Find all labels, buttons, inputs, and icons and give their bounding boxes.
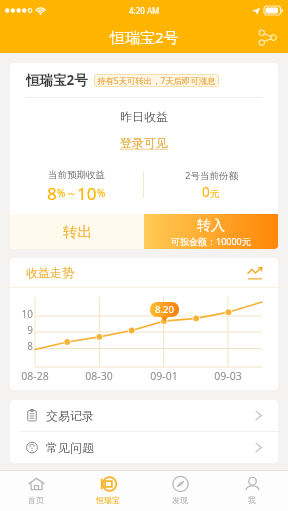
staticText: 8 <box>10 339 33 353</box>
staticText: 可投金额：10000元 <box>171 235 251 247</box>
staticText: 恒瑞宝2号 <box>110 27 179 47</box>
staticText: 发现 <box>172 495 188 505</box>
staticText: 4:20 AM <box>129 5 160 16</box>
staticText: 登录可见 <box>120 135 168 150</box>
staticText: 08-30 <box>79 369 119 383</box>
staticText: 首页 <box>28 495 44 505</box>
button[interactable]: Trend chart <box>244 262 266 284</box>
staticText: 10 <box>10 307 33 321</box>
staticText: 交易记录 <box>46 408 94 423</box>
button[interactable]: 登录可见 <box>120 135 168 150</box>
staticText: 8.20 <box>155 303 174 316</box>
button[interactable]: 常见问题 <box>10 432 278 463</box>
staticText: 0 <box>202 183 210 201</box>
staticText: 08-28 <box>15 369 55 383</box>
button[interactable]: 首页 <box>0 471 72 511</box>
staticText: 当前预期收益 <box>48 169 105 181</box>
staticText: 恒瑞宝2号 <box>26 71 88 89</box>
staticText: 转出 <box>63 223 92 241</box>
staticText: 8 <box>47 182 57 202</box>
button[interactable]: 发现 <box>144 471 216 511</box>
staticText: 9 <box>10 323 33 337</box>
staticText: 昨日收益 <box>120 109 168 124</box>
button[interactable]: Share <box>252 22 282 52</box>
staticText: % <box>57 186 66 200</box>
staticText: 09-01 <box>144 369 184 383</box>
button[interactable]: 恒瑞宝 <box>72 471 144 511</box>
button[interactable]: 交易记录 <box>10 400 278 431</box>
staticText: 10 <box>77 182 97 202</box>
button[interactable]: 我 <box>216 471 288 511</box>
staticText: 持有5天可转出，7天后即可涨息 <box>97 75 216 86</box>
staticText: 元 <box>210 188 220 200</box>
staticText: 09-03 <box>208 369 248 383</box>
button[interactable]: 转入 <box>144 214 278 249</box>
staticText: % <box>97 186 106 200</box>
staticText: 恒瑞宝 <box>96 495 120 505</box>
button[interactable]: 转出 <box>10 214 144 249</box>
staticText: 收益走势 <box>26 265 74 280</box>
staticText: ～ <box>66 186 77 200</box>
staticText: 转入 <box>197 217 225 235</box>
staticText: 常见问题 <box>46 440 94 455</box>
staticText: 2号当前份额 <box>185 169 238 182</box>
staticText: 我 <box>248 495 256 505</box>
